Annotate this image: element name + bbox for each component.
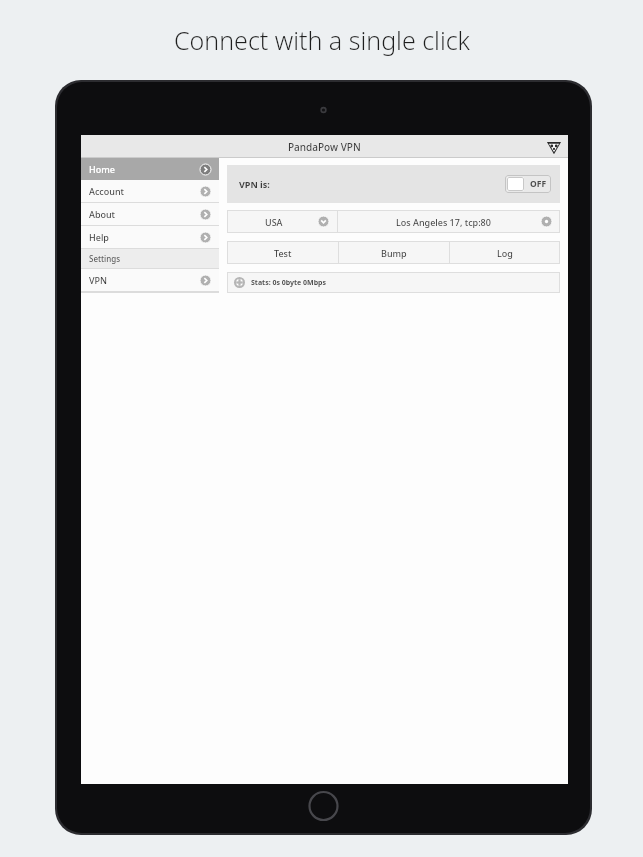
staticText: Log	[497, 247, 513, 259]
button[interactable]: VPN is:	[227, 165, 560, 203]
button[interactable]: VPN toggle, off	[505, 175, 551, 193]
staticText: VPN is:	[239, 178, 270, 190]
button[interactable]: USA	[227, 210, 337, 233]
button[interactable]: Stats: 0s 0byte 0Mbps	[227, 272, 560, 293]
button[interactable]: Log	[450, 241, 560, 264]
staticText: PandaPow VPN	[288, 140, 361, 154]
staticText: USA	[265, 216, 283, 228]
staticText: Home	[89, 163, 115, 175]
staticText: Account	[89, 185, 124, 197]
button[interactable]: Home	[81, 158, 219, 180]
button[interactable]: VPN	[81, 269, 219, 291]
button[interactable]: Help	[81, 226, 219, 248]
staticText: Bump	[381, 247, 407, 259]
staticText: About	[89, 208, 116, 220]
button[interactable]: Bump	[339, 241, 449, 264]
staticText: Los Angeles 17, tcp:80	[396, 216, 491, 228]
staticText: OFF	[530, 178, 547, 190]
staticText: Stats: 0s 0byte 0Mbps	[251, 278, 327, 288]
staticText: VPN	[89, 274, 108, 286]
staticText: Help	[89, 231, 109, 243]
button[interactable]: PandaPow logo	[546, 139, 562, 155]
staticText: Settings	[89, 253, 121, 264]
staticText: Test	[274, 247, 292, 259]
button[interactable]: Los Angeles 17, tcp:80	[338, 210, 560, 233]
button[interactable]: Test	[227, 241, 338, 264]
button[interactable]: About	[81, 203, 219, 225]
staticText: Connect with a single click	[174, 23, 470, 57]
button[interactable]: Account	[81, 180, 219, 202]
